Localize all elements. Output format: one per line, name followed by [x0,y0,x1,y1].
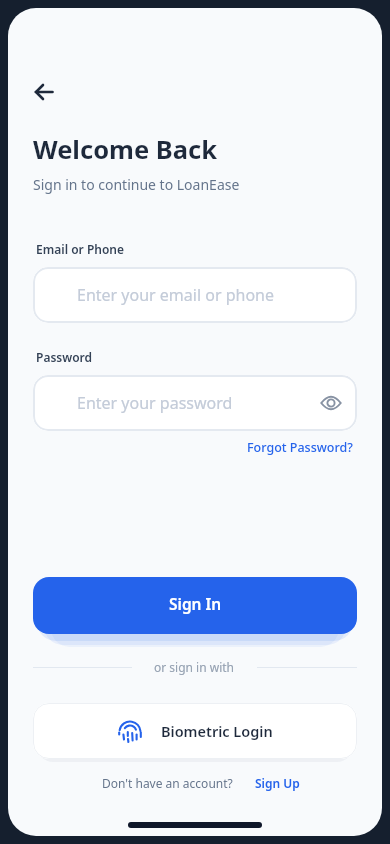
staticText: Enter your email or phone [77,284,274,306]
staticText: Don't have an account? [102,775,233,791]
button[interactable] [319,391,343,415]
button[interactable]: Sign In [33,577,357,634]
staticText: Enter your password [77,392,233,414]
staticText: Password [36,349,93,365]
button[interactable]: Sign Up [255,775,300,791]
staticText: Biometric Login [161,721,273,741]
staticText: Sign in to continue to LoanEase [33,175,240,194]
button[interactable]: Forgot Password? [247,439,353,456]
staticText: Email or Phone [36,241,124,257]
staticText: Sign Up [255,775,300,791]
button[interactable]: Enter your email or phone [33,267,357,323]
button[interactable]: Biometric Login [33,703,357,759]
button[interactable]: Enter your password [33,375,357,431]
button[interactable] [26,74,62,110]
staticText: or sign in with [154,659,235,675]
staticText: Sign In [169,593,222,614]
staticText: Welcome Back [33,132,217,167]
staticText: Forgot Password? [247,439,353,456]
